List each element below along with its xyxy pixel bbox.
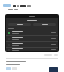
button[interactable]: Preview image: [49, 67, 58, 72]
button[interactable]: [6, 36, 58, 41]
button[interactable]: [33, 23, 56, 26]
button[interactable]: [3, 4, 11, 7]
button[interactable]: [54, 54, 58, 56]
button[interactable]: [8, 23, 31, 26]
button[interactable]: [6, 30, 58, 35]
button[interactable]: [6, 42, 58, 47]
button[interactable]: [44, 54, 52, 56]
button[interactable]: [6, 48, 58, 51]
